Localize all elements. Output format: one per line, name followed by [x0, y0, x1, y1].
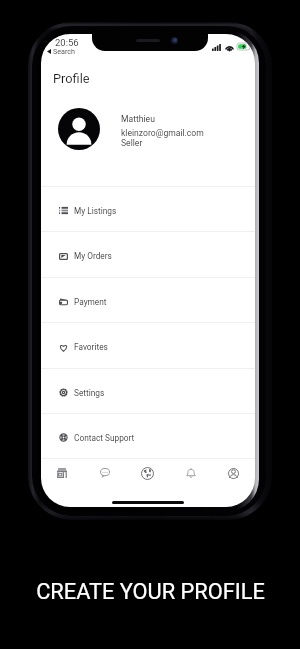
staticText: Payment: [74, 297, 107, 307]
staticText: Settings: [74, 388, 105, 398]
button[interactable]: My Listings: [41, 186, 255, 231]
button[interactable]: Notifications: [169, 459, 212, 487]
button[interactable]: Messages: [83, 459, 126, 487]
staticText: Contact Support: [74, 433, 135, 443]
staticText: Favorites: [74, 342, 108, 352]
button[interactable]: Account: [212, 459, 255, 487]
button[interactable]: Payment: [41, 277, 255, 322]
staticText: My Listings: [74, 206, 117, 216]
staticText: Matthieu: [121, 114, 155, 124]
staticText: Search: [53, 47, 76, 55]
button[interactable]: My store: [41, 459, 83, 487]
staticText: My Orders: [74, 251, 112, 261]
staticText: 20:56: [55, 37, 79, 48]
staticText: kleinzoro@gmail.com: [121, 128, 204, 138]
button[interactable]: Contact Support: [41, 413, 255, 458]
staticText: Profile: [53, 71, 90, 86]
button[interactable]: Explore: [126, 459, 169, 487]
staticText: Seller: [121, 138, 143, 148]
button[interactable]: My Orders: [41, 231, 255, 277]
button[interactable]: Favorites: [41, 322, 255, 368]
staticText: CREATE YOUR PROFILE: [36, 579, 265, 605]
button[interactable]: Settings: [41, 368, 255, 413]
